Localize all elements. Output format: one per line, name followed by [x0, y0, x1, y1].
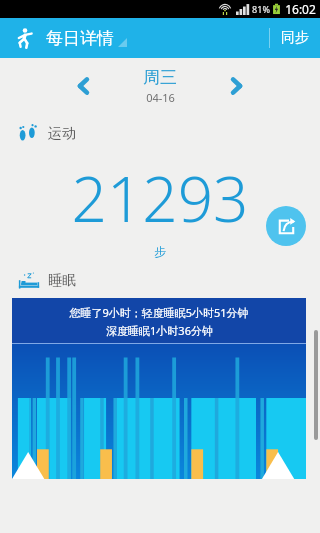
staticText: 16:02 — [285, 1, 316, 17]
staticText: 04-16 — [146, 90, 175, 105]
staticText: 步 — [154, 244, 166, 259]
button[interactable]: Share — [266, 206, 306, 246]
staticText: 周三 — [143, 67, 177, 88]
button[interactable]: 您睡了9小时；轻度睡眠5小时51分钟 — [12, 298, 306, 344]
staticText: 21293 — [71, 156, 249, 240]
staticText: 运动 — [48, 125, 76, 143]
staticText: 您睡了9小时；轻度睡眠5小时51分钟 — [69, 305, 249, 320]
staticText: 睡眠 — [48, 272, 76, 290]
button[interactable]: Next day — [222, 71, 252, 101]
button[interactable]: 周三 — [143, 67, 177, 105]
button[interactable]: 同步 — [270, 18, 320, 58]
staticText: 81% — [252, 3, 270, 15]
button[interactable]: 每日详情 — [46, 28, 127, 49]
button[interactable]: 睡眠 — [18, 264, 320, 298]
staticText: 同步 — [281, 29, 309, 47]
button[interactable]: App icon — [12, 25, 38, 51]
staticText: 每日详情 — [46, 28, 114, 49]
button[interactable]: 运动 — [18, 114, 320, 154]
button[interactable]: Previous day — [68, 71, 98, 101]
staticText: 深度睡眠1小时36分钟 — [106, 323, 213, 338]
